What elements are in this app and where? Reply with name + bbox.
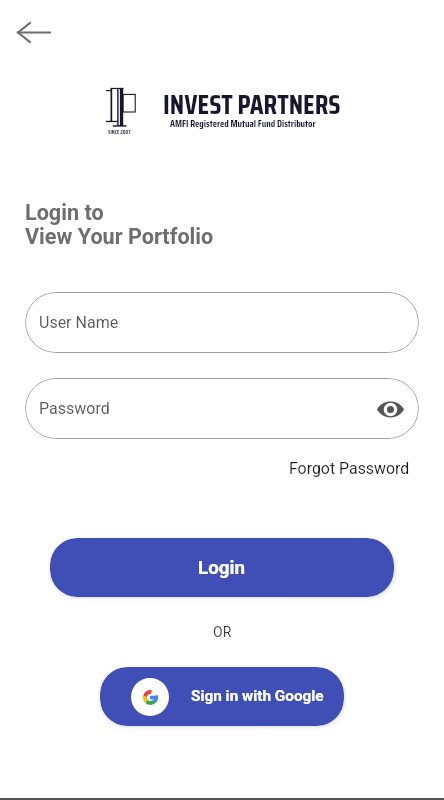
button[interactable]: Sign in with Google <box>100 667 344 726</box>
button[interactable]: Login <box>50 538 394 597</box>
staticText: SINCE 2007 <box>108 128 131 137</box>
staticText: Forgot Password <box>289 459 410 478</box>
staticText: Password <box>39 399 110 418</box>
button[interactable]: Back <box>12 10 56 54</box>
button[interactable]: Forgot Password <box>279 453 420 484</box>
staticText: Sign in with Google <box>191 687 324 705</box>
staticText: Login <box>198 557 246 579</box>
button[interactable]: Password <box>25 378 419 439</box>
button[interactable]: User Name <box>25 292 419 353</box>
staticText: User Name <box>39 313 119 332</box>
staticText: AMFI Registered Mutual Fund Distributor <box>170 116 316 132</box>
staticText: OR <box>213 624 232 640</box>
staticText: Login to View Your Portfolio <box>25 200 214 249</box>
button[interactable]: Show password <box>374 393 406 425</box>
staticText: INVEST PARTNERS <box>163 83 341 126</box>
